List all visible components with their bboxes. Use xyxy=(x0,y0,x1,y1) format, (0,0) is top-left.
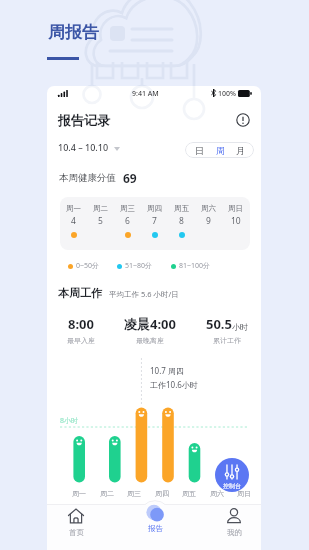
staticText: 本周工作 xyxy=(58,286,102,300)
staticText: 报告 xyxy=(148,524,163,533)
staticText: 首页 xyxy=(69,528,84,537)
staticText: 周报告 xyxy=(48,22,99,43)
staticText: 51~80分 xyxy=(125,261,153,271)
staticText: 10 xyxy=(231,215,241,227)
staticText: 周四 xyxy=(147,204,162,213)
staticText: 9 xyxy=(206,215,211,227)
staticText: 5 xyxy=(98,215,103,227)
staticText: 小时 xyxy=(232,322,248,332)
staticText: 8:00 xyxy=(68,315,94,333)
staticText: 69 xyxy=(123,170,137,186)
staticText: 周日 xyxy=(237,489,251,498)
staticText: 周三 xyxy=(120,204,135,213)
staticText: 9:41 AM xyxy=(132,89,159,99)
staticText: 日 xyxy=(195,145,204,156)
button[interactable]: 周 xyxy=(210,142,230,158)
staticText: 凌晨4:00 xyxy=(124,315,176,333)
staticText: 周三 xyxy=(127,489,141,498)
button[interactable]: 控制台 xyxy=(215,458,249,492)
staticText: 月 xyxy=(236,145,245,156)
staticText: 8 xyxy=(179,215,184,227)
staticText: 周五 xyxy=(174,204,189,213)
staticText: 周四 xyxy=(155,489,169,498)
staticText: 最晚离座 xyxy=(136,336,164,345)
staticText: 周一 xyxy=(66,204,81,213)
staticText: 周六 xyxy=(201,204,216,213)
staticText: 报告记录 xyxy=(58,112,110,128)
staticText: 周日 xyxy=(228,204,243,213)
staticText: 本周健康分值 xyxy=(59,172,116,184)
button[interactable]: Info xyxy=(236,113,250,127)
staticText: 最早入座 xyxy=(67,336,95,345)
staticText: 6 xyxy=(125,215,130,227)
button[interactable]: 月 xyxy=(230,142,250,158)
button[interactable]: 日 xyxy=(189,142,210,158)
staticText: 控制台 xyxy=(223,482,241,490)
staticText: 周六 xyxy=(210,489,224,498)
staticText: 周二 xyxy=(100,489,114,498)
staticText: 周二 xyxy=(93,204,108,213)
staticText: 50.5 xyxy=(206,315,232,333)
staticText: 7 xyxy=(152,215,157,227)
staticText: 10.4 – 10.10 xyxy=(58,141,109,153)
staticText: 我的 xyxy=(227,528,242,537)
staticText: 0~50分 xyxy=(76,261,100,271)
button[interactable]: 报告 xyxy=(139,504,171,533)
staticText: 周 xyxy=(216,145,225,156)
staticText: 累计工作 xyxy=(213,336,241,345)
staticText: 81~100分 xyxy=(179,261,211,271)
staticText: 8小时 xyxy=(60,416,79,426)
staticText: 10.7 周四 xyxy=(150,365,184,376)
staticText: 周五 xyxy=(182,489,196,498)
staticText: 工作10.6小时 xyxy=(150,379,198,390)
staticText: 100% xyxy=(218,89,236,99)
button[interactable]: 我的 xyxy=(218,508,250,537)
button[interactable]: 首页 xyxy=(60,508,92,537)
staticText: 平均工作 5.6 小时/日 xyxy=(109,289,179,299)
staticText: 4 xyxy=(71,215,76,227)
staticText: 周一 xyxy=(72,489,86,498)
